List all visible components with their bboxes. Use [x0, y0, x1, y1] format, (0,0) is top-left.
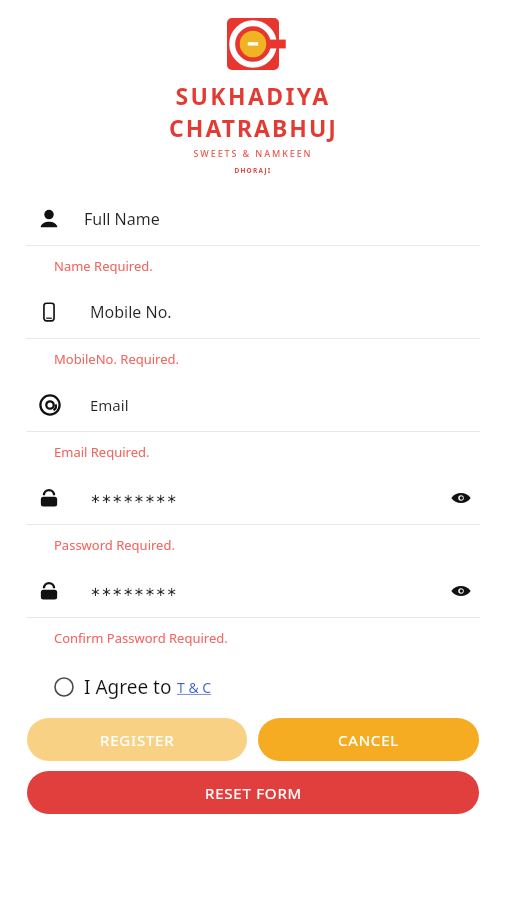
staticText: RESET FORM	[205, 783, 302, 803]
staticText: ∗∗∗∗∗∗∗∗	[90, 584, 178, 599]
button[interactable]: Email	[0, 379, 506, 431]
staticText: Email	[90, 395, 129, 415]
staticText: Password Required.	[54, 536, 175, 554]
button[interactable]: ∗∗∗∗∗∗∗∗	[0, 472, 506, 524]
staticText: Mobile No.	[90, 301, 172, 323]
staticText: SWEETS & NAMKEEN	[193, 147, 313, 159]
staticText: REGISTER	[100, 730, 175, 750]
staticText: Confirm Password Required.	[54, 629, 228, 647]
staticText: I Agree to	[84, 674, 177, 700]
button[interactable]: T & C	[177, 678, 212, 697]
button[interactable]: CANCEL	[258, 718, 479, 761]
staticText: Email Required.	[54, 443, 150, 461]
button[interactable]: REGISTER	[27, 718, 247, 761]
staticText: DHORAJI	[234, 166, 272, 175]
staticText: CHATRABHUJ	[169, 112, 338, 143]
staticText: Name Required.	[54, 257, 153, 275]
button[interactable]: Mobile No.	[0, 286, 506, 338]
button[interactable]: RESET FORM	[27, 771, 479, 814]
button[interactable]: Show password	[448, 578, 474, 604]
button[interactable]: I Agree to	[54, 674, 212, 700]
staticText: SUKHADIYA	[175, 80, 331, 111]
staticText: ∗∗∗∗∗∗∗∗	[90, 491, 178, 506]
button[interactable]: Show password	[448, 485, 474, 511]
button[interactable]: ∗∗∗∗∗∗∗∗	[0, 565, 506, 617]
staticText: MobileNo. Required.	[54, 350, 180, 368]
button[interactable]: Full Name	[0, 193, 506, 245]
staticText: CANCEL	[338, 730, 399, 750]
staticText: Full Name	[84, 208, 160, 230]
